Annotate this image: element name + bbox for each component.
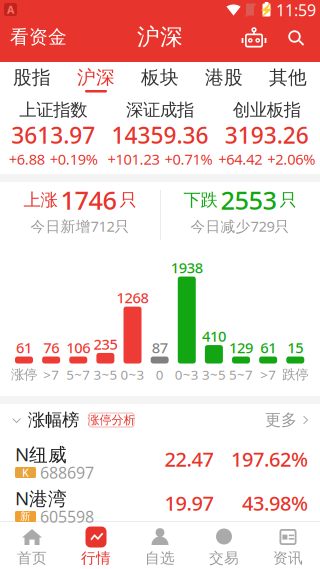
staticText: 14359.36 <box>111 120 208 150</box>
staticText: 今日减少729只 <box>190 216 289 236</box>
button[interactable]: Search <box>283 27 309 49</box>
staticText: 看资金 <box>10 25 67 48</box>
staticText: 61 <box>16 338 32 357</box>
staticText: +6.88 <box>9 149 45 169</box>
staticText: 0 <box>156 366 164 383</box>
button[interactable]: 上证指数 <box>0 96 107 172</box>
button[interactable]: 涨停分析 <box>89 413 134 427</box>
staticText: 下跌 <box>183 189 217 211</box>
button[interactable]: N港湾 <box>0 476 320 520</box>
staticText: 3613.97 <box>11 120 95 150</box>
staticText: 0~3 <box>175 366 199 383</box>
staticText: 87 <box>152 338 168 357</box>
staticText: 交易 <box>209 549 239 567</box>
button[interactable]: 港股 <box>192 62 256 93</box>
staticText: 涨幅榜 <box>28 409 79 431</box>
button[interactable]: 涨幅榜 <box>12 408 88 432</box>
staticText: +64.42 <box>218 149 262 169</box>
staticText: 129 <box>229 338 253 357</box>
staticText: 2553 <box>220 183 276 217</box>
staticText: >7 <box>43 366 59 383</box>
staticText: 板块 <box>141 66 179 89</box>
staticText: +0.19% <box>50 149 98 169</box>
staticText: 只 <box>119 189 136 211</box>
staticText: 资讯 <box>273 549 303 567</box>
staticText: 11:59 <box>276 0 316 21</box>
staticText: 自选 <box>145 549 175 567</box>
button[interactable]: 股指 <box>0 62 64 93</box>
staticText: 只 <box>279 189 296 211</box>
button[interactable]: AI assistant <box>240 27 268 49</box>
staticText: 股指 <box>13 66 51 89</box>
staticText: N纽威 <box>15 442 67 466</box>
button[interactable]: 下跌 <box>160 182 320 240</box>
button[interactable]: 交易 <box>192 522 256 569</box>
button[interactable]: 行情 <box>64 522 128 569</box>
staticText: +2.06% <box>267 149 315 169</box>
staticText: 43.98% <box>242 490 308 516</box>
button[interactable]: 其他 <box>256 62 320 93</box>
staticText: 15 <box>287 338 303 357</box>
staticText: 605598 <box>40 506 94 527</box>
staticText: 沪深 <box>77 66 115 89</box>
staticText: 上证指数 <box>19 99 87 121</box>
staticText: 涨停 <box>11 366 37 383</box>
staticText: 3193.26 <box>225 120 309 150</box>
button[interactable]: N纽威 <box>0 432 320 476</box>
staticText: 5~7 <box>229 366 253 383</box>
staticText: 创业板指 <box>233 99 301 121</box>
staticText: 上涨 <box>23 189 57 211</box>
button[interactable]: 板块 <box>128 62 192 93</box>
staticText: 19.97 <box>164 490 213 516</box>
button[interactable]: 看资金 <box>0 24 70 50</box>
staticText: 今日新增712只 <box>30 216 129 236</box>
staticText: 76 <box>43 338 59 357</box>
staticText: 跌停 <box>282 366 308 383</box>
staticText: 410 <box>202 326 226 346</box>
staticText: 3~5 <box>202 366 226 383</box>
button[interactable]: 首页 <box>0 522 64 569</box>
staticText: 106 <box>66 338 90 357</box>
staticText: >7 <box>260 366 276 383</box>
staticText: +101.23 <box>107 149 159 169</box>
staticText: +0.71% <box>164 149 212 169</box>
staticText: 3~5 <box>93 366 117 383</box>
button[interactable]: 资讯 <box>256 522 320 569</box>
staticText: 沪深 <box>137 23 183 51</box>
staticText: 1746 <box>60 183 116 217</box>
staticText: 港股 <box>205 66 243 89</box>
staticText: ⚡ <box>259 3 274 16</box>
staticText: 涨停分析 <box>87 413 135 427</box>
staticText: 新 <box>20 510 31 523</box>
button[interactable]: 创业板指 <box>213 96 320 172</box>
button[interactable]: 上涨 <box>0 182 160 240</box>
staticText: 1268 <box>116 288 148 307</box>
staticText: 688697 <box>40 462 94 483</box>
staticText: A <box>7 2 14 17</box>
staticText: K <box>22 465 29 480</box>
button[interactable]: 沪深 <box>64 62 128 93</box>
staticText: 61 <box>260 338 276 357</box>
staticText: 197.62% <box>231 446 308 472</box>
button[interactable]: 自选 <box>128 522 192 569</box>
button[interactable]: 深证成指 <box>107 96 213 172</box>
staticText: 首页 <box>17 549 47 567</box>
staticText: 1938 <box>171 258 203 277</box>
staticText: 0~3 <box>120 366 144 383</box>
staticText: 22.47 <box>164 446 213 472</box>
staticText: 5~7 <box>66 366 90 383</box>
button[interactable]: 更多 <box>250 408 308 432</box>
staticText: 235 <box>93 334 117 354</box>
staticText: N港湾 <box>15 486 67 510</box>
staticText: 深证成指 <box>126 99 194 121</box>
staticText: 行情 <box>81 549 111 567</box>
staticText: 其他 <box>269 66 307 89</box>
staticText: 更多 <box>265 410 297 430</box>
